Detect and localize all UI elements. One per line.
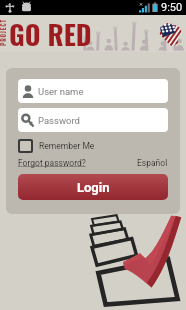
button[interactable]: Forgot password?: [18, 158, 86, 168]
staticText: User name: [38, 86, 84, 97]
staticText: Password: [38, 115, 80, 126]
button[interactable]: Remember Me: [18, 139, 95, 153]
staticText: Login: [77, 180, 110, 195]
button[interactable]: Español: [137, 158, 168, 168]
staticText: GO RED: [9, 14, 92, 51]
staticText: PROJECT: [0, 19, 8, 46]
staticText: 9:50: [161, 1, 183, 14]
staticText: Remember Me: [39, 141, 95, 151]
button[interactable]: Password: [18, 108, 168, 132]
button[interactable]: User name: [18, 79, 168, 103]
button[interactable]: Login: [18, 174, 168, 200]
